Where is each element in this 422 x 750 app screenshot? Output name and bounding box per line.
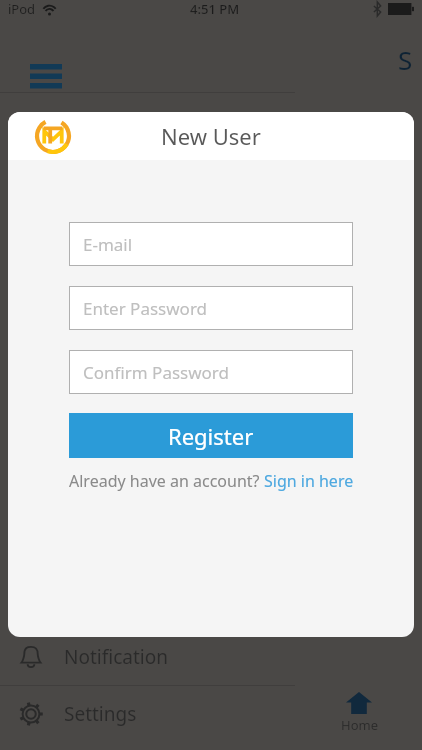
staticText: Notification bbox=[64, 644, 168, 670]
button[interactable]: Register bbox=[69, 413, 353, 458]
staticText: Sign in here bbox=[264, 470, 354, 492]
button[interactable]: Enter Password bbox=[69, 286, 353, 330]
button[interactable]: Home bbox=[316, 692, 402, 734]
staticText: Register bbox=[168, 421, 254, 451]
staticText: iPod bbox=[8, 0, 36, 18]
staticText: Settings bbox=[64, 701, 137, 727]
staticText: New User bbox=[161, 121, 261, 151]
staticText: Confirm Password bbox=[83, 361, 229, 384]
button[interactable]: Already have an account? bbox=[8, 470, 414, 492]
button[interactable]: Confirm Password bbox=[69, 350, 353, 394]
staticText: S bbox=[398, 42, 413, 77]
staticText: Home bbox=[341, 716, 378, 734]
button[interactable]: E-mail bbox=[69, 222, 353, 266]
button[interactable]: Notification bbox=[0, 629, 295, 685]
button[interactable]: Menu bbox=[30, 64, 62, 90]
staticText: Enter Password bbox=[83, 297, 208, 320]
staticText: Already have an account? bbox=[69, 470, 264, 492]
staticText: 4:51 PM bbox=[190, 0, 240, 18]
staticText: E-mail bbox=[83, 233, 133, 256]
button[interactable]: Settings bbox=[0, 686, 295, 742]
